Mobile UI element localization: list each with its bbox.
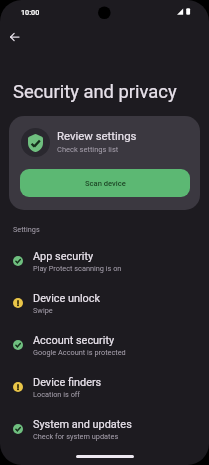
staticText: Swipe: [33, 306, 53, 315]
button[interactable]: Device finders: [0, 366, 209, 408]
staticText: Check settings list: [57, 145, 119, 154]
staticText: Device unlock: [33, 292, 101, 305]
button[interactable]: Back: [2, 25, 26, 49]
button[interactable]: Scan device: [20, 169, 190, 197]
staticText: Play Protect scanning is on: [33, 264, 122, 273]
staticText: Device finders: [33, 376, 102, 389]
button[interactable]: System and updates: [0, 408, 209, 450]
staticText: Security and privacy: [13, 81, 177, 103]
staticText: Settings: [13, 225, 40, 234]
button[interactable]: Device unlock: [0, 282, 209, 324]
staticText: Account security: [33, 334, 115, 347]
staticText: Review settings: [57, 129, 137, 142]
button[interactable]: Account security: [0, 324, 209, 366]
button[interactable]: App security: [0, 240, 209, 282]
staticText: Check for system updates: [33, 432, 119, 441]
staticText: System and updates: [33, 418, 132, 431]
staticText: 10:00: [21, 8, 40, 16]
staticText: App security: [33, 250, 94, 263]
staticText: Google Account is protected: [33, 348, 126, 357]
staticText: Scan device: [85, 179, 126, 188]
staticText: Location is off: [33, 390, 80, 399]
